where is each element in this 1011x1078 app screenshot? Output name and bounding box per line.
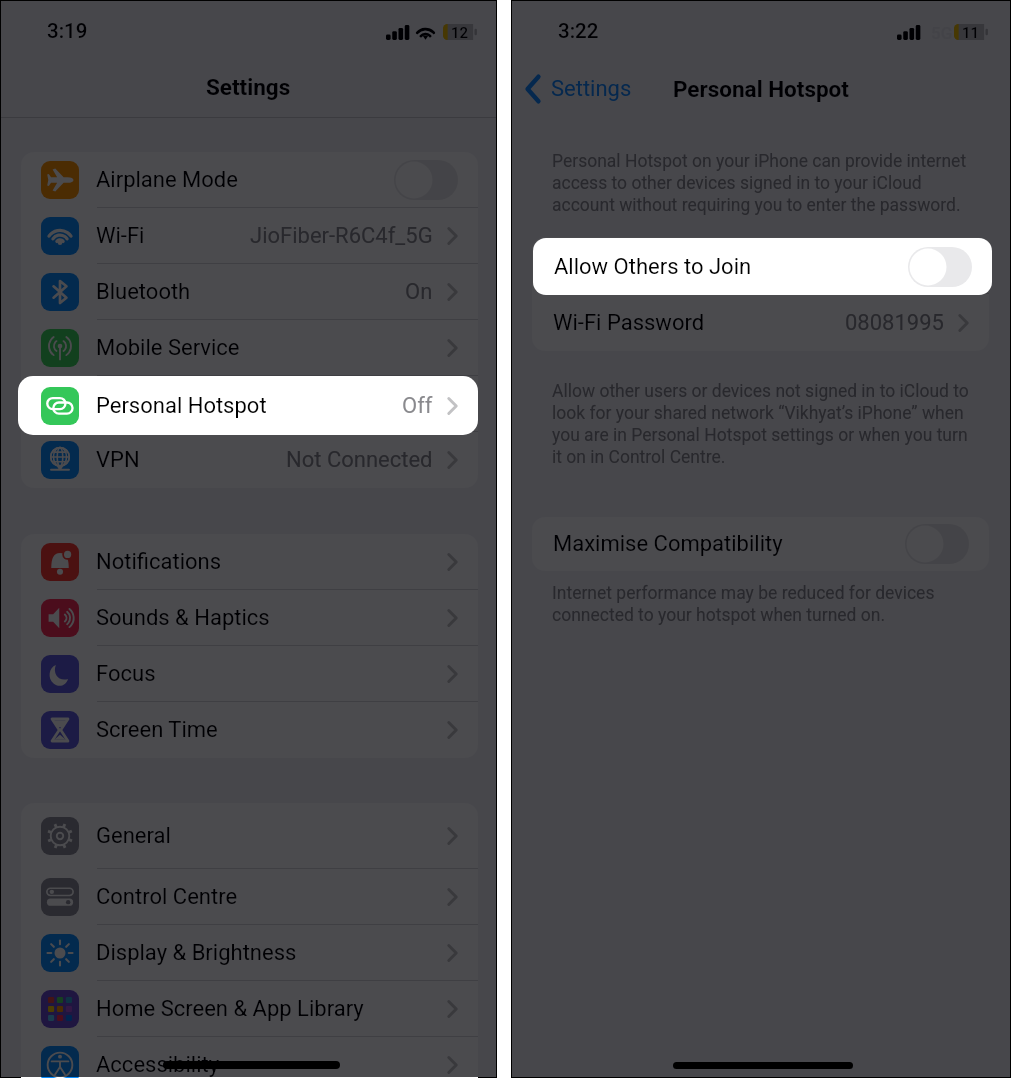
button[interactable]: Mobile Service (21, 320, 478, 376)
staticText: Maximise Compatibility (553, 531, 783, 557)
staticText: 12 (451, 24, 469, 40)
staticText: 3:22 (558, 19, 599, 43)
staticText: Not Connected (286, 447, 433, 473)
staticText: VPN (96, 447, 140, 473)
button[interactable]: Toggle (394, 160, 458, 200)
other: Back (525, 75, 541, 103)
staticText: Screen Time (96, 717, 218, 743)
button[interactable]: Personal Hotspot (21, 376, 478, 432)
staticText: Off (402, 393, 433, 419)
staticText: Allow Others to Join (553, 253, 751, 279)
button[interactable]: General (21, 803, 478, 869)
button[interactable]: Allow Others to Join (533, 238, 992, 295)
button[interactable]: Wi-Fi (21, 208, 478, 264)
button[interactable]: Display & Brightness (21, 925, 478, 981)
button[interactable]: Allow Others to Join (533, 238, 992, 295)
staticText: Airplane Mode (96, 167, 238, 193)
staticText: Display & Brightness (96, 940, 297, 966)
button[interactable]: VPN (21, 432, 478, 488)
staticText: Notifications (96, 549, 222, 575)
button[interactable]: Accessibility (21, 1037, 478, 1078)
staticText: Personal Hotspot (673, 76, 849, 102)
button[interactable]: Personal Hotspot (21, 377, 478, 434)
button[interactable]: Allow Others to Join (532, 237, 989, 294)
staticText: General (96, 823, 171, 849)
button[interactable]: Personal Hotspot (18, 376, 478, 435)
button[interactable]: Control Centre (21, 869, 478, 925)
staticText: Wi-Fi (96, 223, 145, 249)
staticText: Personal Hotspot (96, 393, 267, 419)
button[interactable]: Maximise Compatibility (532, 517, 989, 571)
staticText: Wi-Fi Password (553, 310, 705, 336)
button[interactable]: Toggle (905, 524, 969, 564)
staticText: 08081995 (845, 310, 944, 336)
button[interactable]: Airplane Mode (21, 152, 478, 208)
staticText: Sounds & Haptics (96, 605, 270, 631)
staticText: 3:19 (47, 19, 88, 43)
button[interactable]: Focus (21, 646, 478, 702)
staticText: Allow Others to Join (554, 254, 752, 280)
staticText: Control Centre (96, 884, 238, 910)
staticText: JioFiber-R6C4f_5G (250, 223, 433, 249)
button[interactable]: Back (512, 69, 640, 109)
staticText: Focus (96, 661, 156, 687)
button[interactable]: Screen Time (21, 702, 478, 758)
button[interactable]: Bluetooth (21, 264, 478, 320)
button[interactable]: Toggle (908, 247, 972, 287)
staticText: Off (402, 391, 433, 417)
staticText: Accessibility (96, 1052, 220, 1078)
staticText: On (405, 279, 433, 305)
staticText: Personal Hotspot on your iPhone can prov… (552, 151, 978, 216)
button[interactable]: Home Screen & App Library (21, 981, 478, 1037)
staticText: Settings (206, 74, 291, 100)
button[interactable]: Notifications (21, 534, 478, 590)
staticText: Internet performance may be reduced for … (552, 583, 978, 626)
button[interactable]: Toggle (905, 246, 969, 286)
staticText: Allow other users or devices not signed … (552, 381, 978, 468)
staticText: Home Screen & App Library (96, 996, 364, 1022)
staticText: Mobile Service (96, 335, 240, 361)
staticText: Personal Hotspot (96, 391, 267, 417)
button[interactable]: Wi-Fi Password (532, 294, 989, 351)
staticText: Bluetooth (96, 279, 191, 305)
button[interactable]: Sounds & Haptics (21, 590, 478, 646)
staticText: 11 (962, 24, 980, 40)
staticText: Settings (551, 76, 632, 102)
